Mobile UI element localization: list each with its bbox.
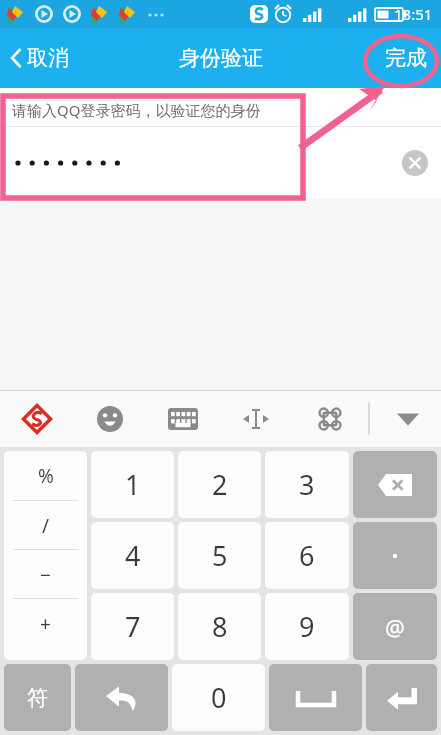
button[interactable]: 0 [172, 664, 265, 731]
button[interactable]: Enter [366, 664, 437, 731]
staticText: 0 [211, 679, 227, 716]
button[interactable]: At sign [353, 593, 437, 660]
button[interactable]: More tools [293, 390, 367, 447]
button[interactable]: % [4, 451, 87, 501]
staticText: 请输入QQ登录密码，以验证您的身份 [12, 100, 261, 120]
staticText: 13:51 [394, 4, 433, 24]
button[interactable]: 完成 [369, 35, 441, 81]
button[interactable]: Sogou input [0, 390, 73, 447]
staticText: 7 [125, 608, 141, 645]
staticText: 符 [27, 685, 48, 711]
button[interactable]: − [4, 550, 87, 599]
button[interactable]: 2 [178, 451, 261, 518]
staticText: 9 [299, 608, 315, 645]
button[interactable]: Return arrow [75, 664, 168, 731]
staticText: 4 [125, 537, 141, 574]
button[interactable]: Emoji [73, 390, 146, 447]
button[interactable]: Hide keyboard [367, 390, 441, 447]
button[interactable]: Space [269, 664, 362, 731]
staticText: @ [385, 612, 405, 642]
button[interactable]: Keyboard layout [146, 390, 219, 447]
button[interactable]: 9 [265, 593, 349, 660]
staticText: % [38, 463, 54, 489]
staticText: 完成 [385, 45, 427, 71]
staticText: 3 [299, 466, 315, 503]
button[interactable]: 5 [178, 522, 261, 589]
button[interactable]: Move cursor [219, 390, 293, 447]
button[interactable]: 6 [265, 522, 349, 589]
button[interactable]: 符 [4, 664, 71, 731]
staticText: 身份验证 [179, 45, 263, 71]
button[interactable]: 取消 [0, 37, 81, 79]
staticText: + [40, 611, 51, 637]
staticText: 取消 [27, 45, 69, 71]
staticText: 1 [125, 466, 141, 503]
staticText: − [40, 562, 51, 588]
button[interactable]: 3 [265, 451, 349, 518]
button[interactable]: + [4, 599, 87, 648]
button[interactable]: 4 [91, 522, 174, 589]
button[interactable]: Clear [402, 150, 428, 176]
button[interactable]: Backspace [353, 451, 437, 518]
button[interactable]: / [4, 501, 87, 550]
staticText: 2 [212, 466, 228, 503]
staticText: 5 [212, 537, 228, 574]
staticText: / [42, 513, 50, 539]
button[interactable]: 8 [178, 593, 261, 660]
staticText: 8 [212, 608, 228, 645]
staticText: 6 [299, 537, 315, 574]
button[interactable]: Period [353, 522, 437, 589]
button[interactable]: 7 [91, 593, 174, 660]
button[interactable]: 1 [91, 451, 174, 518]
